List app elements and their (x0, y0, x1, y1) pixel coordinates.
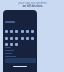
button[interactable] (31, 30, 34, 33)
button[interactable] (26, 37, 29, 40)
button[interactable] (31, 37, 34, 40)
button[interactable] (15, 37, 18, 40)
button[interactable] (26, 30, 29, 33)
button[interactable] (21, 37, 24, 40)
button[interactable] (21, 30, 24, 33)
button[interactable] (15, 43, 18, 46)
staticText: on all devices (22, 4, 43, 8)
button[interactable] (5, 37, 8, 40)
button[interactable] (10, 43, 13, 46)
button[interactable] (10, 30, 13, 33)
button[interactable] (10, 37, 13, 40)
staticText: your app everywhere (18, 1, 47, 5)
button[interactable] (5, 43, 8, 46)
button[interactable] (5, 30, 8, 33)
button[interactable] (15, 30, 18, 33)
